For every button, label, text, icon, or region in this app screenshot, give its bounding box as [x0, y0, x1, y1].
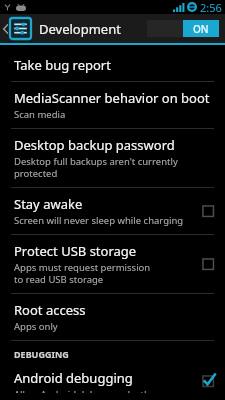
staticText: Android debugging [14, 369, 133, 387]
staticText: ON [193, 22, 209, 36]
staticText: Stay awake [14, 195, 83, 213]
button[interactable]: Desktop backup password [0, 129, 225, 187]
staticText: Development [39, 20, 121, 38]
button[interactable]: ON [147, 20, 219, 37]
button[interactable]: Root access [0, 294, 225, 340]
staticText: Desktop full backups aren't currently pr… [14, 155, 216, 180]
button[interactable]: Navigate up [0, 16, 33, 41]
staticText: 2:56 [200, 0, 222, 14]
staticText: Apps only [14, 320, 216, 333]
staticText: Root access [14, 301, 86, 319]
staticText: MediaScanner behavior on boot [14, 89, 210, 107]
button[interactable]: MediaScanner behavior on boot [0, 82, 225, 128]
staticText: Scan media [14, 108, 216, 121]
button[interactable]: Take bug report [0, 49, 225, 81]
staticText: Desktop backup password [14, 136, 175, 154]
button[interactable]: Protect USB storage [0, 235, 225, 293]
button[interactable]: Android debugging [0, 362, 225, 400]
staticText: DEBUGGING [14, 348, 69, 360]
button[interactable]: Stay awake [0, 188, 225, 234]
staticText: Apps must request permission to read USB… [14, 261, 160, 286]
staticText: Allow Android debug mode, the adb interf… [14, 388, 164, 393]
staticText: Take bug report [14, 56, 111, 74]
staticText: Protect USB storage [14, 242, 137, 260]
staticText: Screen will never sleep while charging [14, 214, 197, 227]
